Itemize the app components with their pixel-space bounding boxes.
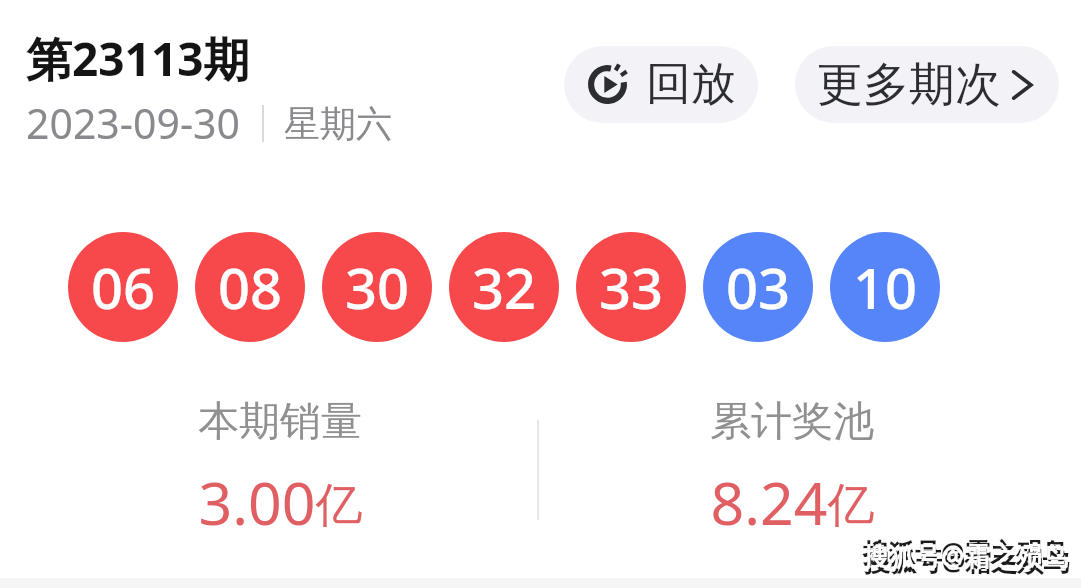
staticText: 累计奖池	[710, 396, 874, 448]
staticText: 32	[472, 249, 537, 325]
button[interactable]: Replay	[564, 46, 758, 123]
staticText: 本期销量	[198, 396, 362, 448]
staticText: 06	[91, 249, 156, 325]
staticText: 10	[853, 249, 918, 325]
other: Replay	[587, 64, 628, 105]
staticText: 搜狐号@霜之殒鸟	[863, 538, 1069, 574]
button[interactable]: 30	[322, 232, 432, 342]
staticText: 03	[726, 249, 791, 325]
staticText: 2023-09-30	[26, 95, 241, 151]
button[interactable]: 33	[576, 232, 686, 342]
staticText: 30	[345, 249, 410, 325]
button[interactable]: 06	[68, 232, 178, 342]
button[interactable]: 10	[830, 232, 940, 342]
staticText: 8.24亿	[710, 462, 875, 542]
staticText: 08	[218, 249, 283, 325]
staticText: 星期六	[284, 101, 392, 146]
staticText: 回放	[646, 56, 736, 113]
staticText: 搜狐号@霜之殒鸟	[863, 534, 1069, 570]
staticText: 搜狐号@霜之殒鸟	[864, 543, 1070, 579]
button[interactable]: 32	[449, 232, 559, 342]
button[interactable]: 更多期次	[795, 46, 1059, 123]
staticText: 更多期次	[817, 56, 1001, 114]
button[interactable]: 03	[703, 232, 813, 342]
button[interactable]: 08	[195, 232, 305, 342]
staticText: 33	[599, 249, 664, 325]
staticText: 第23113期	[26, 27, 250, 90]
staticText: 3.00亿	[198, 462, 363, 542]
